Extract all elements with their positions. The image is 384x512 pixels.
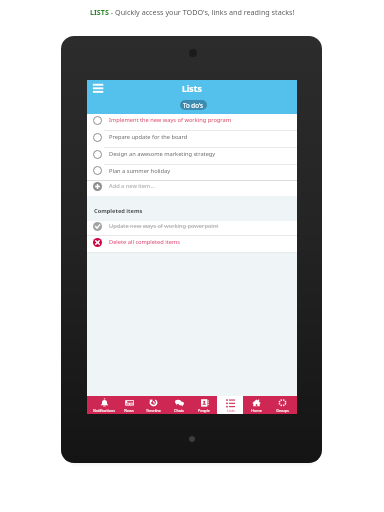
staticText: Chats bbox=[174, 408, 184, 413]
staticText: Timeline bbox=[146, 408, 161, 413]
button[interactable]: Notifications bbox=[91, 396, 116, 414]
button[interactable]: To do's bbox=[180, 100, 207, 110]
button[interactable]: Delete all completed items bbox=[87, 236, 297, 253]
button[interactable]: Plan a summer holiday bbox=[87, 165, 297, 180]
button[interactable]: People bbox=[191, 396, 217, 414]
staticText: Implement the new ways of working progra… bbox=[109, 116, 232, 124]
button[interactable]: News bbox=[116, 396, 141, 414]
staticText: Delete all completed items bbox=[109, 238, 181, 246]
button[interactable]: Home bbox=[243, 396, 269, 414]
staticText: Lists bbox=[227, 408, 235, 413]
button[interactable]: Lists bbox=[217, 396, 243, 414]
staticText: Lists bbox=[182, 83, 202, 95]
staticText: People bbox=[198, 408, 210, 413]
button[interactable]: Update new ways of working powerpoint bbox=[87, 221, 297, 236]
staticText: LISTS bbox=[90, 7, 109, 17]
staticText: Design an awesome marketing strategy bbox=[109, 150, 216, 158]
button[interactable]: Implement the new ways of working progra… bbox=[87, 114, 297, 131]
staticText: Notifications bbox=[93, 408, 115, 413]
staticText: Prepare update for the board bbox=[109, 133, 188, 141]
staticText: News bbox=[124, 408, 134, 413]
staticText: Update new ways of working powerpoint bbox=[109, 222, 219, 230]
staticText: - Quickly access your TODO's, links and … bbox=[109, 7, 295, 17]
staticText: Add a new item... bbox=[109, 182, 155, 190]
button[interactable]: Groups bbox=[269, 396, 295, 414]
staticText: To do's bbox=[183, 101, 204, 109]
button[interactable]: Menu bbox=[90, 81, 106, 95]
staticText: Completed items bbox=[94, 207, 143, 215]
staticText: Groups bbox=[276, 408, 289, 413]
staticText: Plan a summer holiday bbox=[109, 167, 171, 175]
button[interactable]: Design an awesome marketing strategy bbox=[87, 148, 297, 165]
button[interactable]: Add a new item... bbox=[87, 180, 297, 196]
button[interactable]: Chats bbox=[166, 396, 191, 414]
staticText: Home bbox=[251, 408, 262, 413]
button[interactable]: Timeline bbox=[141, 396, 166, 414]
button[interactable]: Prepare update for the board bbox=[87, 131, 297, 148]
